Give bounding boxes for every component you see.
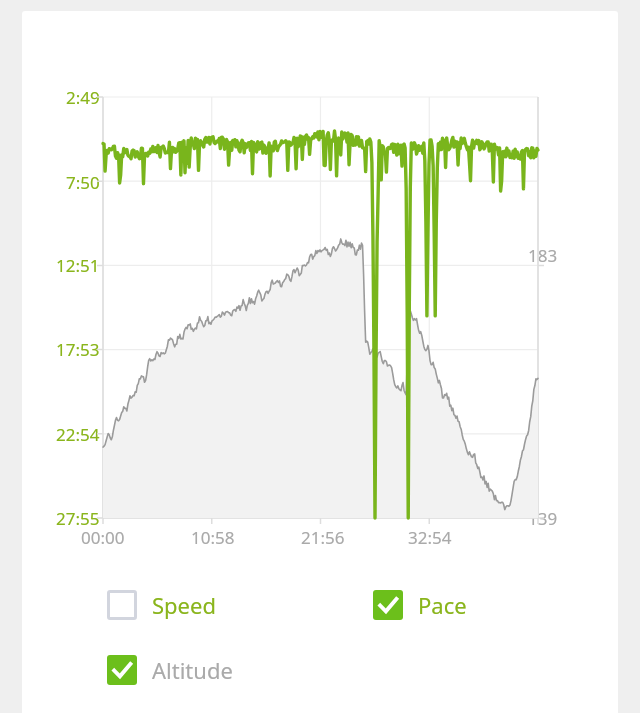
staticText: 17:53 bbox=[56, 338, 100, 361]
staticText: 12:51 bbox=[56, 254, 100, 277]
staticText: 32:54 bbox=[408, 526, 452, 549]
staticText: 27:55 bbox=[56, 507, 100, 530]
staticText: Pace bbox=[418, 590, 467, 620]
staticText: 00:00 bbox=[81, 526, 125, 549]
staticText: 139 bbox=[528, 507, 558, 530]
staticText: Speed bbox=[152, 590, 216, 620]
staticText: 21:56 bbox=[301, 526, 345, 549]
staticText: 10:58 bbox=[191, 526, 235, 549]
button[interactable]: Pace bbox=[370, 587, 469, 623]
staticText: 183 bbox=[528, 244, 558, 267]
staticText: 22:54 bbox=[56, 423, 100, 446]
button[interactable]: Speed bbox=[104, 587, 218, 623]
staticText: Altitude bbox=[152, 655, 233, 685]
staticText: 2:49 bbox=[66, 86, 100, 109]
button[interactable]: Altitude bbox=[104, 652, 235, 688]
staticText: 7:50 bbox=[66, 171, 100, 194]
